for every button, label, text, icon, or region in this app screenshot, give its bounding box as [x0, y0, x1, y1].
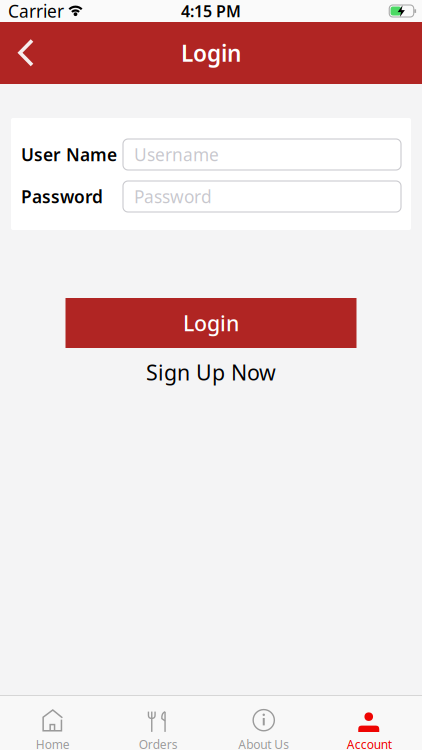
staticText: Username	[134, 143, 219, 166]
staticText: Password	[134, 185, 212, 208]
button[interactable]: Home	[0, 693, 105, 750]
button[interactable]: Sign Up Now	[146, 358, 276, 386]
button[interactable]: Login	[65, 298, 356, 348]
button[interactable]: Account	[316, 693, 422, 750]
button[interactable]: Orders	[105, 693, 211, 750]
staticText: 4:15 PM	[181, 0, 241, 22]
staticText: Carrier	[8, 0, 64, 22]
staticText: Sign Up Now	[146, 358, 276, 386]
staticText: Orders	[139, 736, 178, 750]
button[interactable]: About Us	[211, 693, 316, 750]
staticText: Login	[183, 309, 239, 337]
staticText: User Name	[21, 143, 117, 166]
staticText: Account	[347, 736, 392, 750]
button[interactable]: Back	[0, 31, 34, 75]
staticText: Password	[21, 185, 103, 208]
staticText: About Us	[238, 736, 289, 750]
staticText: Home	[36, 736, 70, 750]
staticText: Login	[181, 38, 241, 68]
